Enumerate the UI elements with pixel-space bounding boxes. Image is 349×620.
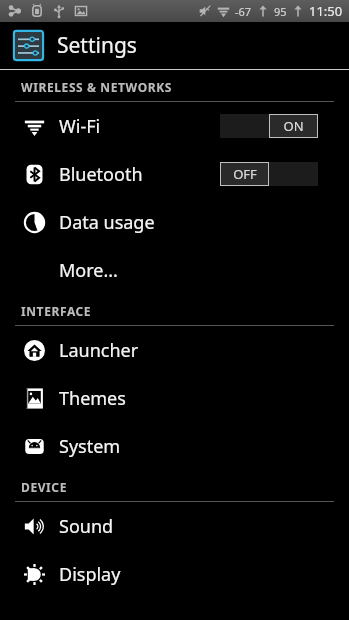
button[interactable]: Bluetooth switch xyxy=(220,162,318,186)
staticText: Display xyxy=(59,562,121,587)
staticText: Wi-Fi xyxy=(59,114,101,139)
staticText: Themes xyxy=(59,386,126,411)
staticText: Settings xyxy=(57,31,137,60)
button[interactable]: Sound xyxy=(0,502,349,550)
staticText: 95 xyxy=(274,4,287,19)
staticText: -67 xyxy=(235,4,252,19)
staticText: More... xyxy=(59,258,118,283)
button[interactable]: More... xyxy=(0,246,349,294)
staticText: Sound xyxy=(59,514,114,539)
staticText: Data usage xyxy=(59,210,155,235)
staticText: DEVICE xyxy=(21,479,67,495)
button[interactable]: Launcher xyxy=(0,326,349,374)
button[interactable]: Wi-Fi xyxy=(0,102,349,150)
staticText: ON xyxy=(283,117,304,135)
button[interactable]: Display xyxy=(0,550,349,598)
staticText: System xyxy=(59,434,121,459)
button[interactable]: Themes xyxy=(0,374,349,422)
button[interactable]: Data usage xyxy=(0,198,349,246)
button[interactable]: System xyxy=(0,422,349,470)
staticText: 11:50 xyxy=(309,2,343,20)
staticText: WIRELESS & NETWORKS xyxy=(21,79,172,95)
button[interactable]: Bluetooth xyxy=(0,150,349,198)
button[interactable]: Settings xyxy=(0,22,349,69)
button[interactable]: Wi-Fi switch xyxy=(220,114,318,138)
staticText: INTERFACE xyxy=(21,303,92,319)
staticText: Bluetooth xyxy=(59,162,143,187)
staticText: OFF xyxy=(233,165,257,183)
staticText: Launcher xyxy=(59,338,139,363)
